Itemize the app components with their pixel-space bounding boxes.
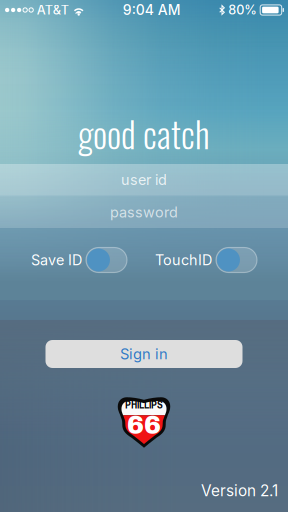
staticText: PHILLIPS [125,397,163,412]
staticText: user id [121,171,167,188]
staticText: AT&T [37,2,69,18]
staticText: Version 2.1 [201,481,278,500]
staticText: TouchID [155,251,212,269]
staticText: 80% [228,2,257,18]
staticText: password [110,203,178,221]
staticText: 9:04 AM [123,1,181,18]
button[interactable]: password [0,196,288,228]
button[interactable]: TouchID [155,247,257,273]
button[interactable]: user id [0,164,288,195]
staticText: 66 [127,411,161,439]
staticText: Sign in [120,345,168,363]
button[interactable]: Save ID [31,247,127,273]
staticText: Save ID [31,251,82,269]
staticText: good catch [78,107,210,159]
button[interactable]: Sign in [45,340,242,368]
